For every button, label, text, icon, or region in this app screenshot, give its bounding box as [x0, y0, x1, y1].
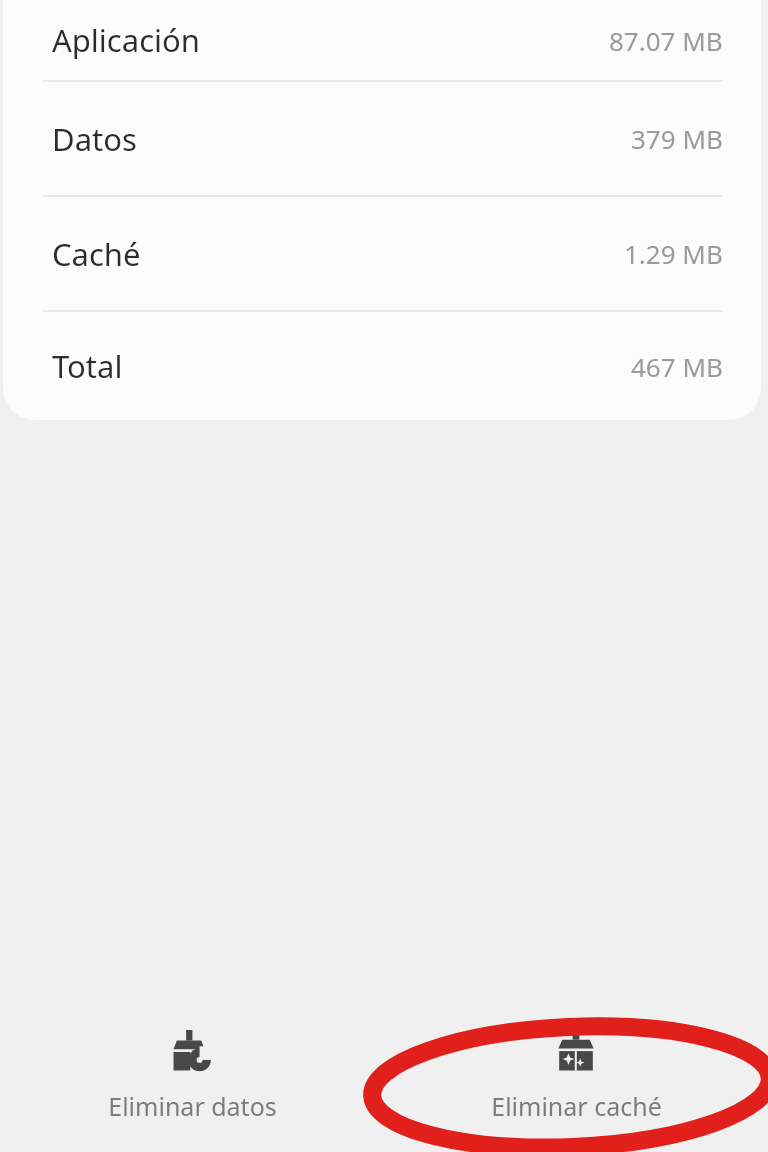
staticText: Total — [52, 345, 123, 387]
button[interactable]: Eliminar caché — [384, 1000, 768, 1152]
other: Eliminar datos — [171, 1030, 213, 1074]
staticText: 379 MB — [631, 121, 723, 156]
staticText: Aplicación — [52, 19, 200, 61]
staticText: 87.07 MB — [609, 23, 723, 58]
staticText: Caché — [52, 233, 141, 275]
button[interactable]: Caché — [3, 195, 761, 310]
staticText: Eliminar datos — [108, 1089, 277, 1123]
button[interactable]: Aplicación — [3, 0, 761, 80]
button[interactable]: Total — [3, 310, 761, 420]
button[interactable]: Datos — [3, 80, 761, 195]
staticText: Eliminar caché — [491, 1089, 662, 1123]
staticText: 1.29 MB — [624, 236, 723, 271]
other: Eliminar caché — [555, 1030, 597, 1074]
button[interactable]: Eliminar datos — [0, 1000, 384, 1152]
staticText: 467 MB — [631, 349, 723, 384]
staticText: Datos — [52, 118, 137, 160]
